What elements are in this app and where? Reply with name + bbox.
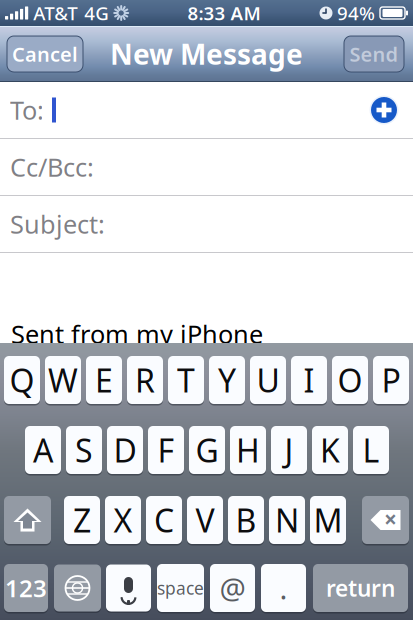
staticText: G	[195, 429, 218, 471]
staticText: B	[235, 499, 256, 541]
staticText: Z	[73, 499, 91, 541]
staticText: Sent from my iPhone	[11, 317, 263, 351]
button[interactable]: V	[187, 496, 223, 544]
staticText: Y	[218, 359, 236, 401]
button[interactable]: D	[107, 426, 143, 474]
button[interactable]: M	[310, 496, 346, 544]
button[interactable]: Dictation	[106, 564, 151, 611]
staticText: E	[95, 359, 113, 401]
staticText: J	[284, 429, 293, 471]
staticText: H	[236, 429, 260, 471]
button[interactable]: J	[271, 426, 307, 474]
staticText: To:	[10, 93, 44, 127]
staticText: I	[303, 359, 314, 401]
staticText: Cancel	[12, 41, 78, 67]
staticText: 8:33 AM	[188, 1, 261, 25]
staticText: New Message	[110, 35, 303, 73]
staticText: N	[275, 499, 299, 541]
staticText: T	[177, 359, 195, 401]
button[interactable]: Q	[4, 356, 40, 404]
button[interactable]: 123	[4, 564, 48, 612]
button[interactable]: I	[291, 356, 327, 404]
button[interactable]: R	[127, 356, 163, 404]
staticText: K	[320, 429, 340, 471]
staticText: R	[135, 359, 155, 401]
staticText: M	[313, 499, 342, 541]
button[interactable]: X	[105, 496, 141, 544]
button[interactable]: Cancel	[7, 36, 83, 72]
button[interactable]: B	[228, 496, 264, 544]
staticText: U	[256, 359, 279, 401]
staticText: P	[381, 359, 400, 401]
button[interactable]: K	[312, 426, 348, 474]
staticText: D	[113, 429, 136, 471]
staticText: 94%	[337, 1, 375, 25]
button[interactable]: T	[168, 356, 204, 404]
staticText: space	[157, 576, 204, 599]
staticText: .	[279, 568, 287, 607]
button[interactable]: W	[45, 356, 81, 404]
staticText: W	[48, 359, 78, 401]
staticText: F	[157, 429, 174, 471]
staticText: S	[75, 429, 93, 471]
button[interactable]: Add contact	[367, 93, 401, 127]
staticText: return	[326, 573, 395, 603]
button[interactable]: L	[353, 426, 389, 474]
button[interactable]: H	[230, 426, 266, 474]
button[interactable]: Y	[209, 356, 245, 404]
button[interactable]: A	[25, 426, 61, 474]
button[interactable]: Z	[64, 496, 100, 544]
button[interactable]: F	[148, 426, 184, 474]
button[interactable]: Shift	[4, 496, 51, 544]
staticText: 123	[5, 572, 47, 604]
button[interactable]: .	[261, 564, 306, 612]
staticText: Subject:	[10, 207, 105, 241]
button[interactable]: Delete	[362, 496, 409, 544]
button[interactable]: N	[269, 496, 305, 544]
button[interactable]: E	[86, 356, 122, 404]
staticText: Cc/Bcc:	[10, 150, 94, 184]
button[interactable]: @	[210, 564, 255, 612]
staticText: L	[362, 429, 379, 471]
button[interactable]: P	[373, 356, 409, 404]
staticText: V	[195, 499, 214, 541]
staticText: @	[219, 568, 245, 607]
button[interactable]: O	[332, 356, 368, 404]
staticText: ×	[384, 504, 397, 534]
button[interactable]: Next keyboard	[54, 564, 101, 611]
staticText: X	[113, 499, 132, 541]
staticText: C	[154, 499, 174, 541]
staticText: Send	[349, 41, 398, 67]
button[interactable]: G	[189, 426, 225, 474]
button[interactable]: Send	[344, 36, 404, 72]
staticText: 4G	[84, 1, 109, 25]
staticText: A	[33, 429, 53, 471]
button[interactable]: return	[313, 564, 408, 612]
button[interactable]: U	[250, 356, 286, 404]
button[interactable]: C	[146, 496, 182, 544]
staticText: AT&T	[33, 1, 77, 25]
button[interactable]: S	[66, 426, 102, 474]
button[interactable]: space	[157, 564, 204, 612]
staticText: Q	[9, 359, 34, 401]
staticText: O	[337, 359, 362, 401]
